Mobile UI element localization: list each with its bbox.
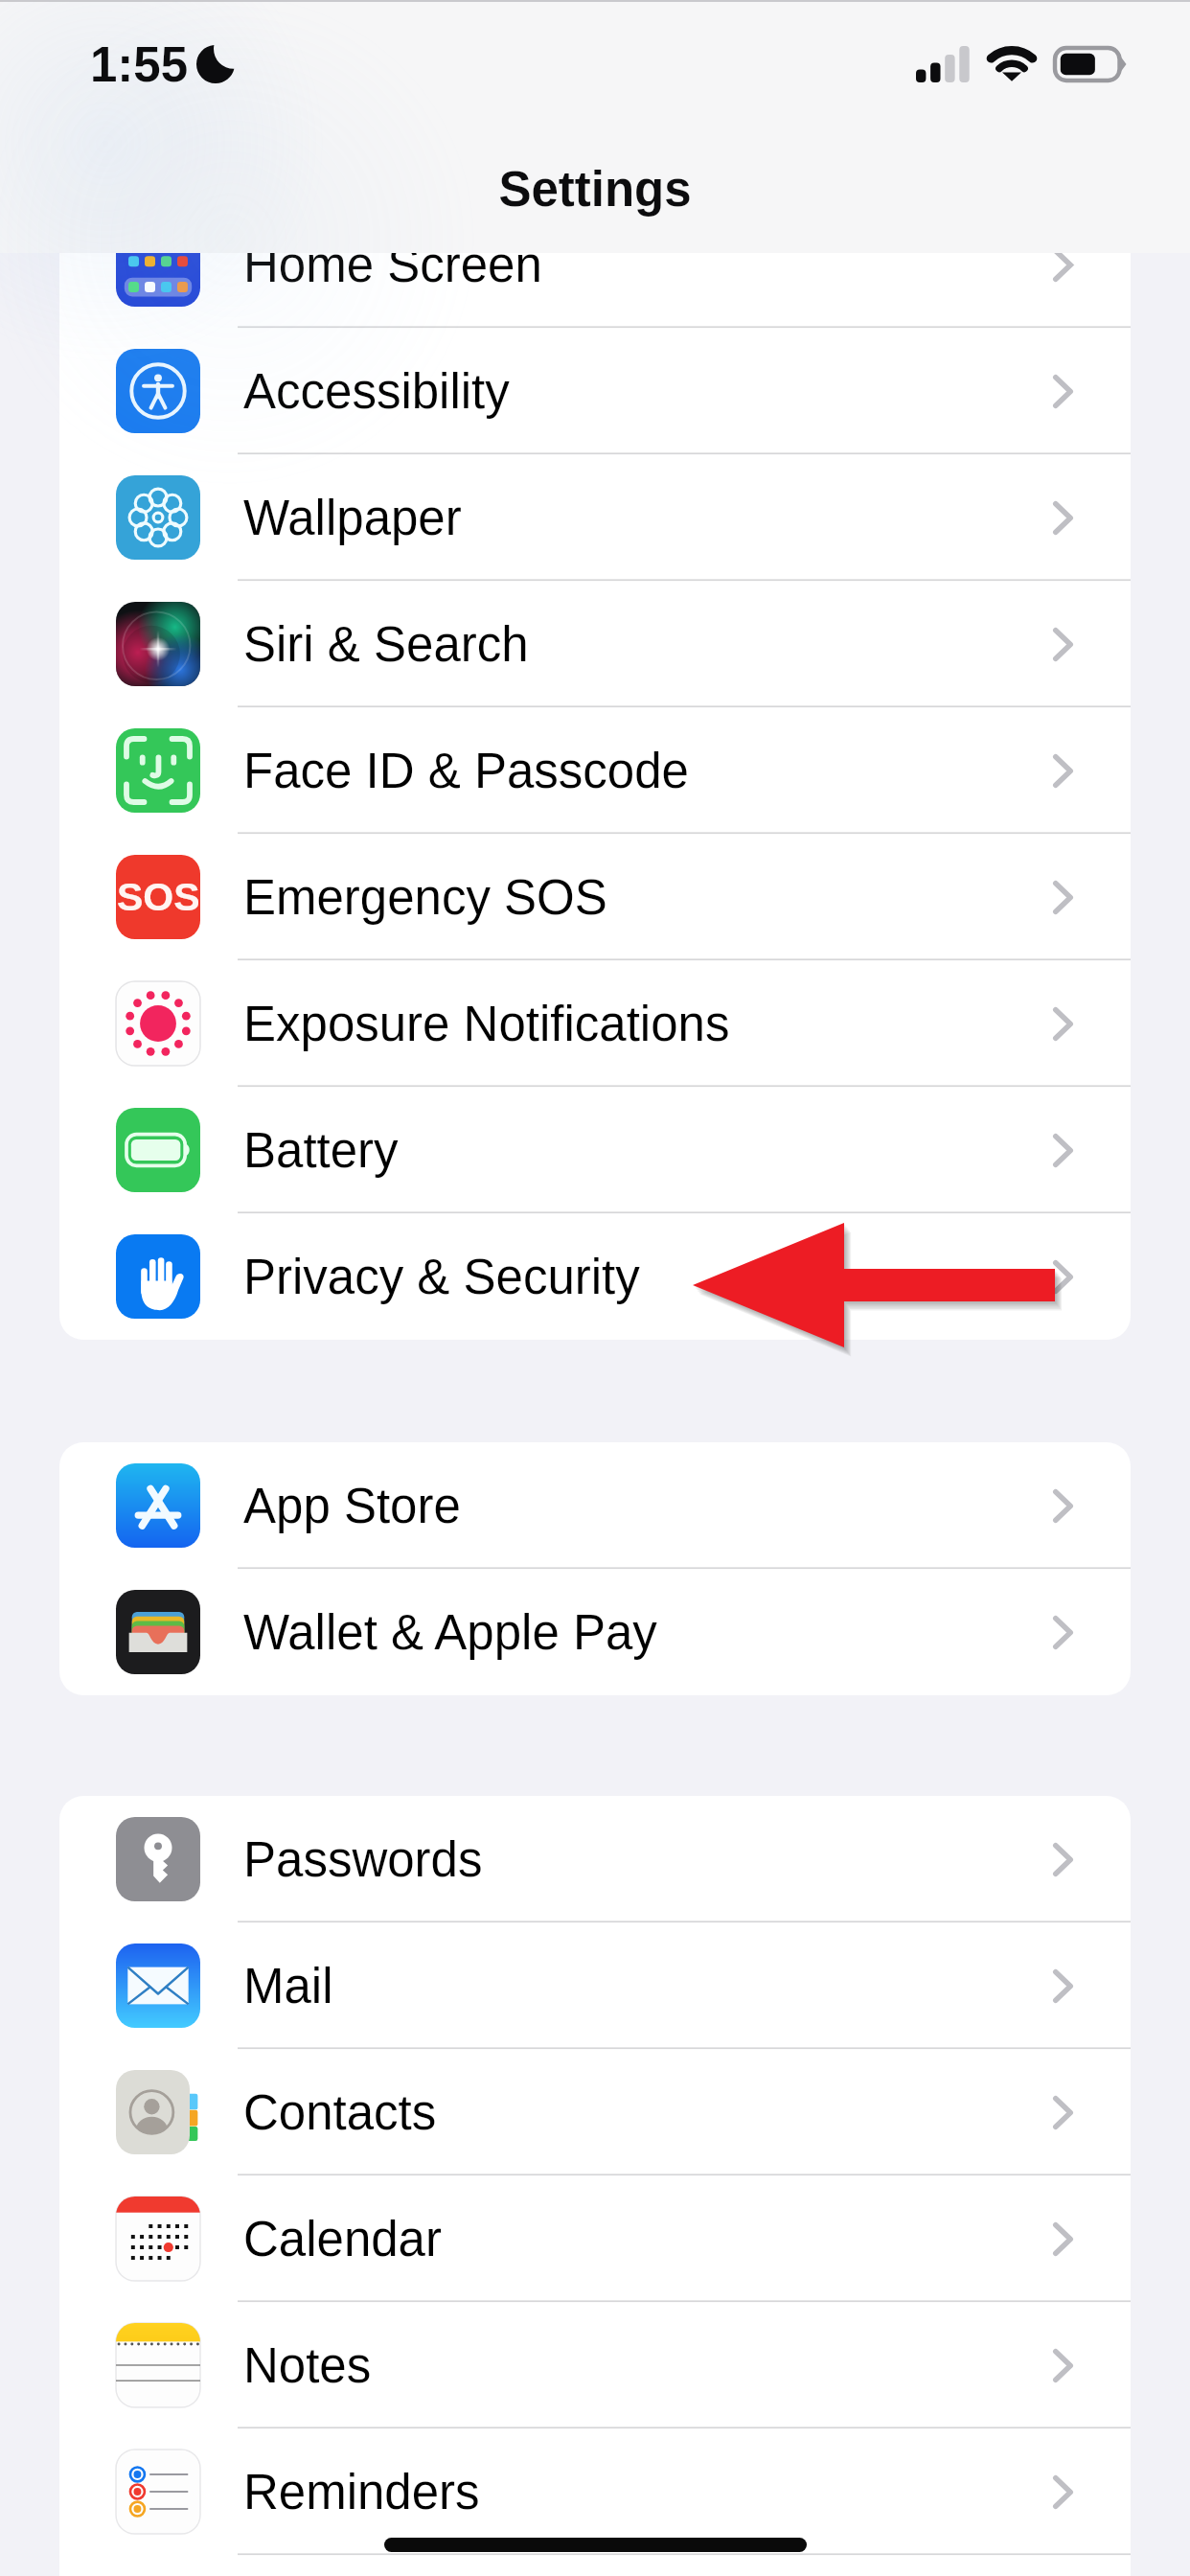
staticText: Exposure Notifications <box>243 997 730 1051</box>
staticText: SOS <box>117 875 200 919</box>
staticText: Calendar <box>243 2212 442 2266</box>
button[interactable]: Accessibility <box>59 328 1131 454</box>
staticText: Contacts <box>243 2085 437 2140</box>
button[interactable]: Battery <box>59 1087 1131 1213</box>
button[interactable]: Wallpaper <box>59 454 1131 581</box>
button[interactable]: Exposure Notifications <box>59 960 1131 1087</box>
button[interactable]: Privacy & Security <box>59 1213 1131 1340</box>
button[interactable]: Notes <box>59 2302 1131 2428</box>
staticText: Accessibility <box>243 364 510 419</box>
button[interactable]: Passwords <box>59 1796 1131 1922</box>
staticText: Wallet & Apple Pay <box>243 1605 657 1660</box>
staticText: App Store <box>243 1479 461 1533</box>
staticText: Battery <box>243 1123 399 1178</box>
staticText: 1:55 <box>90 37 189 92</box>
staticText: Mail <box>243 1959 333 2013</box>
button[interactable]: App Store <box>59 1442 1131 1569</box>
staticText: Emergency SOS <box>243 870 607 925</box>
staticText: Siri & Search <box>243 617 529 672</box>
button[interactable]: Wallet & Apple Pay <box>59 1569 1131 1695</box>
button[interactable]: Mail <box>59 1922 1131 2049</box>
button[interactable]: SOS <box>59 834 1131 960</box>
button[interactable]: Siri & Search <box>59 581 1131 707</box>
button[interactable]: Home Screen <box>59 201 1131 328</box>
staticText: Reminders <box>243 2465 480 2519</box>
staticText: Home Screen <box>243 238 542 292</box>
staticText: Privacy & Security <box>243 1250 640 1304</box>
staticText: Wallpaper <box>243 491 462 545</box>
staticText: Passwords <box>243 1832 483 1887</box>
button[interactable]: Calendar <box>59 2175 1131 2302</box>
button[interactable]: Contacts <box>59 2049 1131 2175</box>
staticText: Face ID & Passcode <box>243 744 689 798</box>
button[interactable]: Reminders <box>59 2428 1131 2555</box>
staticText: Settings <box>498 162 692 217</box>
staticText: Notes <box>243 2338 372 2393</box>
button[interactable]: Face ID & Passcode <box>59 707 1131 834</box>
